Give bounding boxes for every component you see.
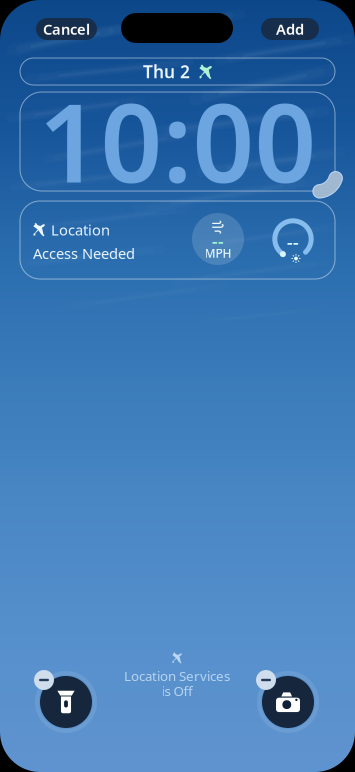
staticText: Cancel bbox=[43, 19, 90, 39]
staticText: -- bbox=[287, 230, 299, 253]
staticText: is Off bbox=[161, 682, 192, 700]
button[interactable]: Remove Flashlight control bbox=[34, 670, 98, 734]
staticText: 10:00 bbox=[38, 69, 316, 212]
button[interactable]: Cancel bbox=[36, 18, 97, 40]
staticText: Thu 2 bbox=[143, 60, 190, 83]
staticText: Add bbox=[276, 19, 304, 39]
staticText: Location bbox=[51, 220, 110, 239]
button[interactable]: Remove Camera control bbox=[256, 670, 320, 734]
button[interactable]: Add bbox=[261, 18, 319, 40]
staticText: Access Needed bbox=[33, 243, 135, 263]
staticText: -- bbox=[212, 229, 224, 252]
button[interactable]: Thu 2 bbox=[20, 58, 335, 85]
staticText: MPH bbox=[204, 245, 231, 261]
staticText: Location Services bbox=[124, 667, 230, 685]
